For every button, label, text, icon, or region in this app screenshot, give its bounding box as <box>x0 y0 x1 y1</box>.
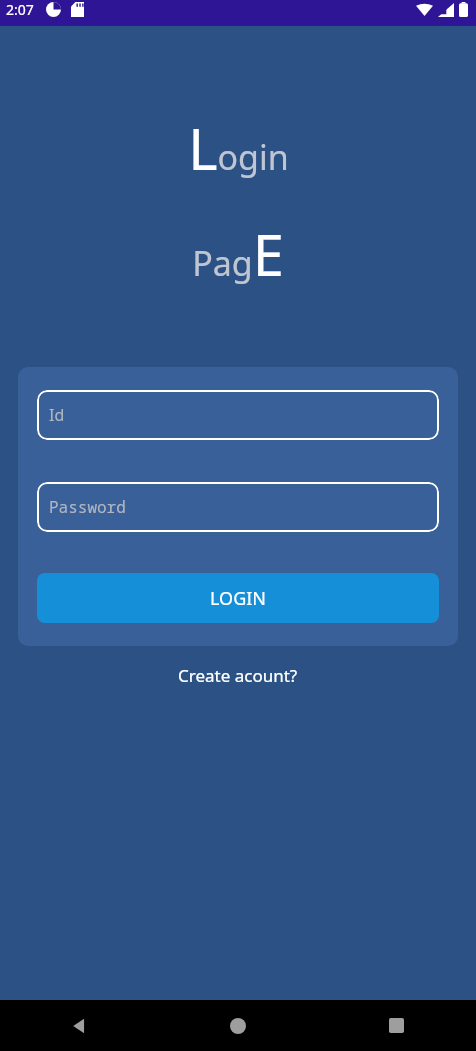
staticText: 2:07 <box>6 0 34 19</box>
staticText: Login <box>188 110 289 186</box>
button[interactable]: Id <box>37 390 439 440</box>
button[interactable]: Password <box>37 482 439 532</box>
staticText: Id <box>49 404 65 426</box>
button[interactable]: Back <box>0 1000 158 1051</box>
staticText: Password <box>49 496 126 518</box>
staticText: PagE <box>192 216 284 292</box>
staticText: LOGIN <box>210 586 267 611</box>
button[interactable]: Home <box>158 1000 317 1051</box>
button[interactable]: Recent apps <box>317 1000 476 1051</box>
button[interactable]: LOGIN <box>37 573 439 623</box>
staticText: Create acount? <box>178 664 298 687</box>
button[interactable]: Create acount? <box>168 660 308 691</box>
